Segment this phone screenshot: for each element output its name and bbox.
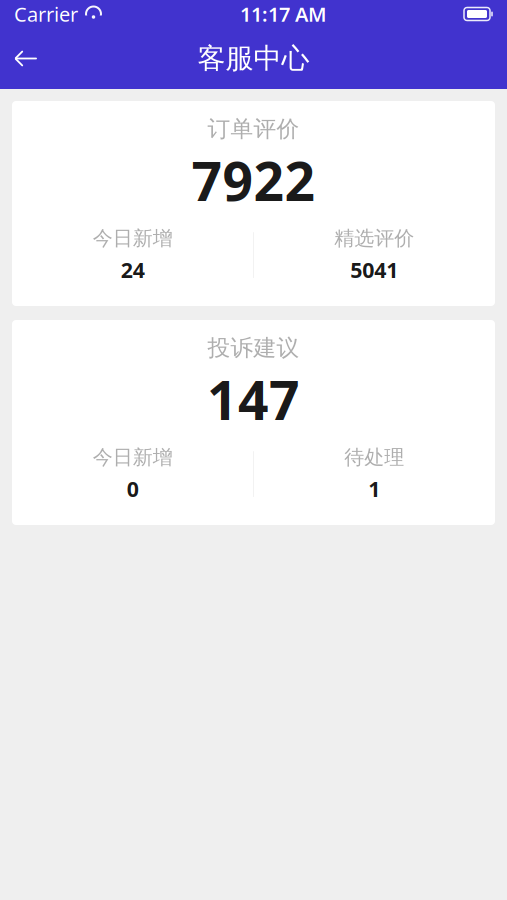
button[interactable]: 投诉建议 — [12, 320, 495, 525]
staticText: 5041 — [350, 256, 398, 284]
button[interactable]: 返回 — [0, 34, 52, 82]
staticText: 订单评价 — [207, 115, 299, 143]
staticText: 客服中心 — [197, 41, 309, 76]
staticText: Carrier — [14, 1, 78, 27]
staticText: 1 — [368, 475, 380, 503]
staticText: 147 — [207, 364, 300, 435]
button[interactable]: 订单评价 — [12, 101, 495, 306]
staticText: 投诉建议 — [207, 334, 299, 362]
staticText: 精选评价 — [334, 226, 414, 251]
staticText: 7922 — [191, 145, 315, 216]
staticText: 今日新增 — [93, 445, 173, 470]
staticText: 待处理 — [344, 445, 404, 470]
staticText: 0 — [127, 475, 139, 503]
staticText: 今日新增 — [93, 226, 173, 251]
staticText: 11:17 AM — [240, 1, 327, 27]
staticText: 24 — [121, 256, 145, 284]
